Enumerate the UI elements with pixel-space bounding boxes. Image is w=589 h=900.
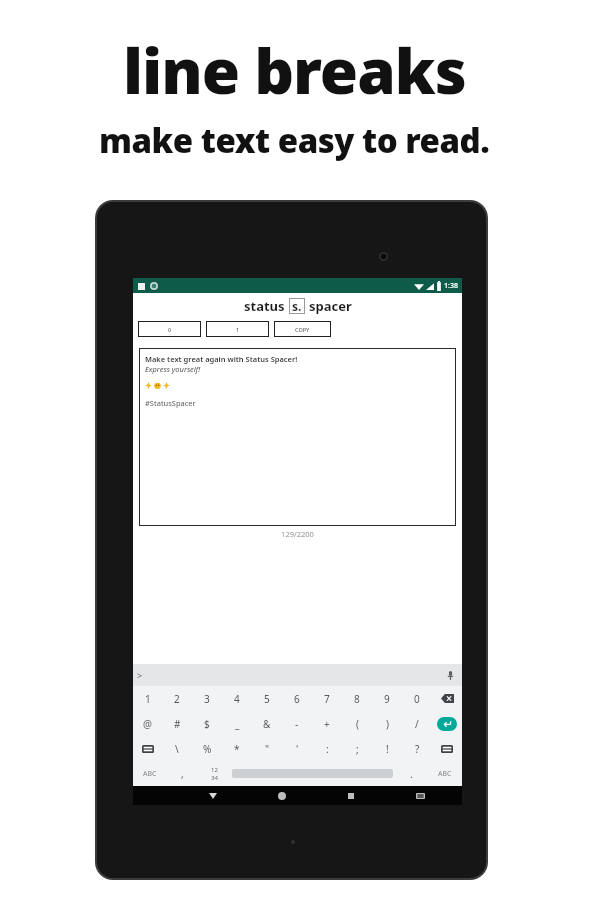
staticText: 1	[145, 692, 151, 706]
button[interactable]: 2	[162, 686, 192, 711]
button[interactable]: 7	[312, 686, 342, 711]
staticText: 0	[168, 326, 172, 333]
button[interactable]: ABC	[133, 761, 167, 786]
button[interactable]: &	[252, 711, 282, 736]
staticText: 3	[204, 692, 210, 706]
staticText: status	[244, 297, 285, 315]
staticText: #StatusSpacer	[145, 398, 196, 408]
button[interactable]: ;	[342, 736, 372, 761]
staticText: (	[356, 717, 359, 731]
staticText: 0	[414, 692, 420, 706]
button[interactable]: '	[282, 736, 312, 761]
staticText: spacer	[309, 297, 352, 315]
button[interactable]: /	[402, 711, 432, 736]
staticText: "	[265, 742, 270, 756]
button[interactable]: Back	[194, 786, 232, 805]
staticText: 5	[264, 692, 270, 706]
staticText: 129/2200	[133, 529, 462, 539]
button[interactable]: $	[192, 711, 222, 736]
staticText: 9	[384, 692, 390, 706]
button[interactable]: Enter	[432, 711, 462, 736]
button[interactable]: _	[222, 711, 252, 736]
button[interactable]: +	[312, 711, 342, 736]
staticText: _	[235, 717, 240, 731]
button[interactable]: 4	[222, 686, 252, 711]
button[interactable]: #	[162, 711, 192, 736]
staticText: 2	[174, 692, 180, 706]
staticText: Express yourself!	[145, 364, 201, 374]
button[interactable]: -	[282, 711, 312, 736]
staticText: 4	[234, 692, 240, 706]
staticText: 8	[354, 692, 360, 706]
button[interactable]: )	[372, 711, 402, 736]
button[interactable]: Recent apps	[332, 786, 370, 805]
button[interactable]: :	[312, 736, 342, 761]
button[interactable]: *	[222, 736, 252, 761]
staticText: make text easy to read.	[99, 118, 490, 163]
button[interactable]: !	[372, 736, 402, 761]
button[interactable]: ?	[402, 736, 432, 761]
staticText: ABC	[438, 769, 452, 779]
button[interactable]: 6	[282, 686, 312, 711]
staticText: 6	[294, 692, 300, 706]
staticText: :	[326, 742, 329, 756]
staticText: +	[324, 717, 330, 731]
button[interactable]: Change keyboard	[401, 786, 439, 805]
button[interactable]: 3	[192, 686, 222, 711]
staticText: 12	[211, 766, 218, 774]
button[interactable]: 1	[206, 321, 269, 337]
staticText: 1:38	[444, 281, 458, 291]
button[interactable]: 0	[138, 321, 201, 337]
button[interactable]: "	[252, 736, 282, 761]
button[interactable]: 12	[198, 761, 230, 786]
button[interactable]: 1	[133, 686, 162, 711]
staticText: COPY	[295, 326, 310, 333]
staticText: !	[386, 742, 389, 756]
staticText: '	[296, 742, 299, 756]
staticText: %	[203, 742, 212, 756]
button[interactable]: >	[137, 669, 143, 681]
staticText: .	[410, 767, 413, 781]
button[interactable]: @	[133, 711, 162, 736]
button[interactable]: ABC	[427, 761, 462, 786]
staticText: Make text great again with Status Spacer…	[145, 354, 298, 364]
button[interactable]: Home	[263, 786, 301, 805]
staticText: @	[143, 717, 152, 731]
staticText: \	[175, 742, 179, 756]
button[interactable]: Switch keyboard	[133, 736, 162, 761]
button[interactable]: .	[395, 761, 427, 786]
button[interactable]: Backspace	[432, 686, 462, 711]
staticText: s.	[292, 298, 302, 314]
staticText: line breaks	[123, 28, 466, 112]
button[interactable]: (	[342, 711, 372, 736]
staticText: 34	[211, 774, 218, 782]
staticText: 1	[236, 326, 240, 333]
staticText: -	[295, 717, 299, 731]
staticText: 7	[324, 692, 330, 706]
button[interactable]: 9	[372, 686, 402, 711]
staticText: ,	[181, 767, 184, 781]
staticText: ABC	[143, 769, 157, 779]
button[interactable]: 0	[402, 686, 432, 711]
button[interactable]: 8	[342, 686, 372, 711]
staticText: /	[415, 717, 419, 731]
button[interactable]: COPY	[274, 321, 331, 337]
button[interactable]: Make text great again with Status Spacer…	[139, 348, 456, 526]
button[interactable]: %	[192, 736, 222, 761]
button[interactable]: ,	[167, 761, 198, 786]
staticText: *	[234, 742, 240, 756]
staticText: #	[174, 717, 181, 731]
button[interactable]: 5	[252, 686, 282, 711]
staticText: $	[204, 717, 210, 731]
staticText: &	[263, 717, 271, 731]
button[interactable]: Voice input	[446, 671, 455, 680]
staticText: ;	[356, 742, 359, 756]
staticText: )	[386, 717, 389, 731]
button[interactable]: \	[162, 736, 192, 761]
staticText: ?	[415, 742, 420, 756]
button[interactable]: Switch keyboard	[432, 736, 462, 761]
